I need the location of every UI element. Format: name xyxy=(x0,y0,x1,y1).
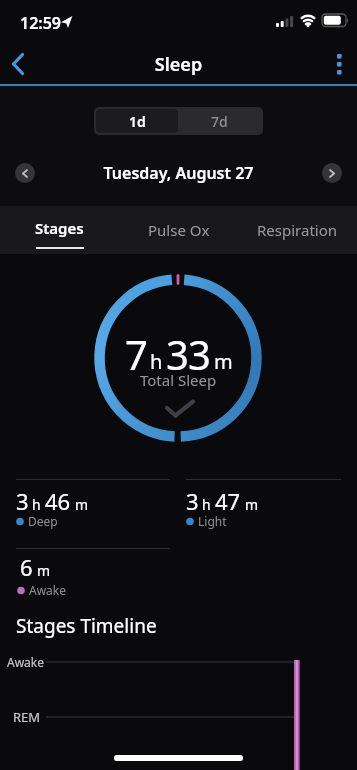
button[interactable] xyxy=(322,163,342,183)
staticText: Light xyxy=(198,513,227,529)
staticText: 46 xyxy=(45,486,71,516)
staticText: Deep xyxy=(28,513,58,529)
staticText: Pulse Ox xyxy=(148,220,210,240)
staticText: 12:59 xyxy=(20,12,62,34)
staticText: REM xyxy=(13,708,41,726)
staticText: m xyxy=(75,495,89,514)
staticText: Awake xyxy=(29,582,67,598)
staticText: Stages xyxy=(35,218,84,238)
staticText: m xyxy=(37,561,51,580)
staticText: Total Sleep xyxy=(140,370,217,390)
button[interactable]: Respiration xyxy=(238,206,357,254)
staticText: 7d xyxy=(211,112,228,131)
staticText: 33 xyxy=(166,327,211,381)
staticText: m xyxy=(245,495,259,514)
button[interactable]: 6 xyxy=(16,548,170,598)
staticText: Tuesday, August 27 xyxy=(0,162,357,184)
button[interactable]: 3 xyxy=(186,479,341,532)
staticText: 7 xyxy=(125,327,148,381)
staticText: 1d xyxy=(129,112,146,131)
staticText: 3 xyxy=(16,486,29,516)
button[interactable] xyxy=(15,163,35,183)
button[interactable]: 7d xyxy=(178,109,261,133)
staticText: m xyxy=(214,348,233,375)
staticText: 47 xyxy=(215,486,241,516)
button[interactable] xyxy=(0,44,36,84)
button[interactable]: 3 xyxy=(16,479,170,532)
staticText: h xyxy=(202,495,211,514)
staticText: Respiration xyxy=(257,220,338,240)
button[interactable]: Stages xyxy=(0,206,119,254)
staticText: h xyxy=(32,495,41,514)
staticText: 6 xyxy=(20,552,33,582)
button[interactable] xyxy=(321,44,357,84)
staticText: 3 xyxy=(186,486,199,516)
staticText: Awake xyxy=(7,654,45,670)
staticText: Sleep xyxy=(0,52,357,77)
staticText: h xyxy=(150,348,163,375)
button[interactable]: Pulse Ox xyxy=(119,206,238,254)
staticText: Stages Timeline xyxy=(16,613,157,639)
button[interactable]: 1d xyxy=(96,109,178,133)
